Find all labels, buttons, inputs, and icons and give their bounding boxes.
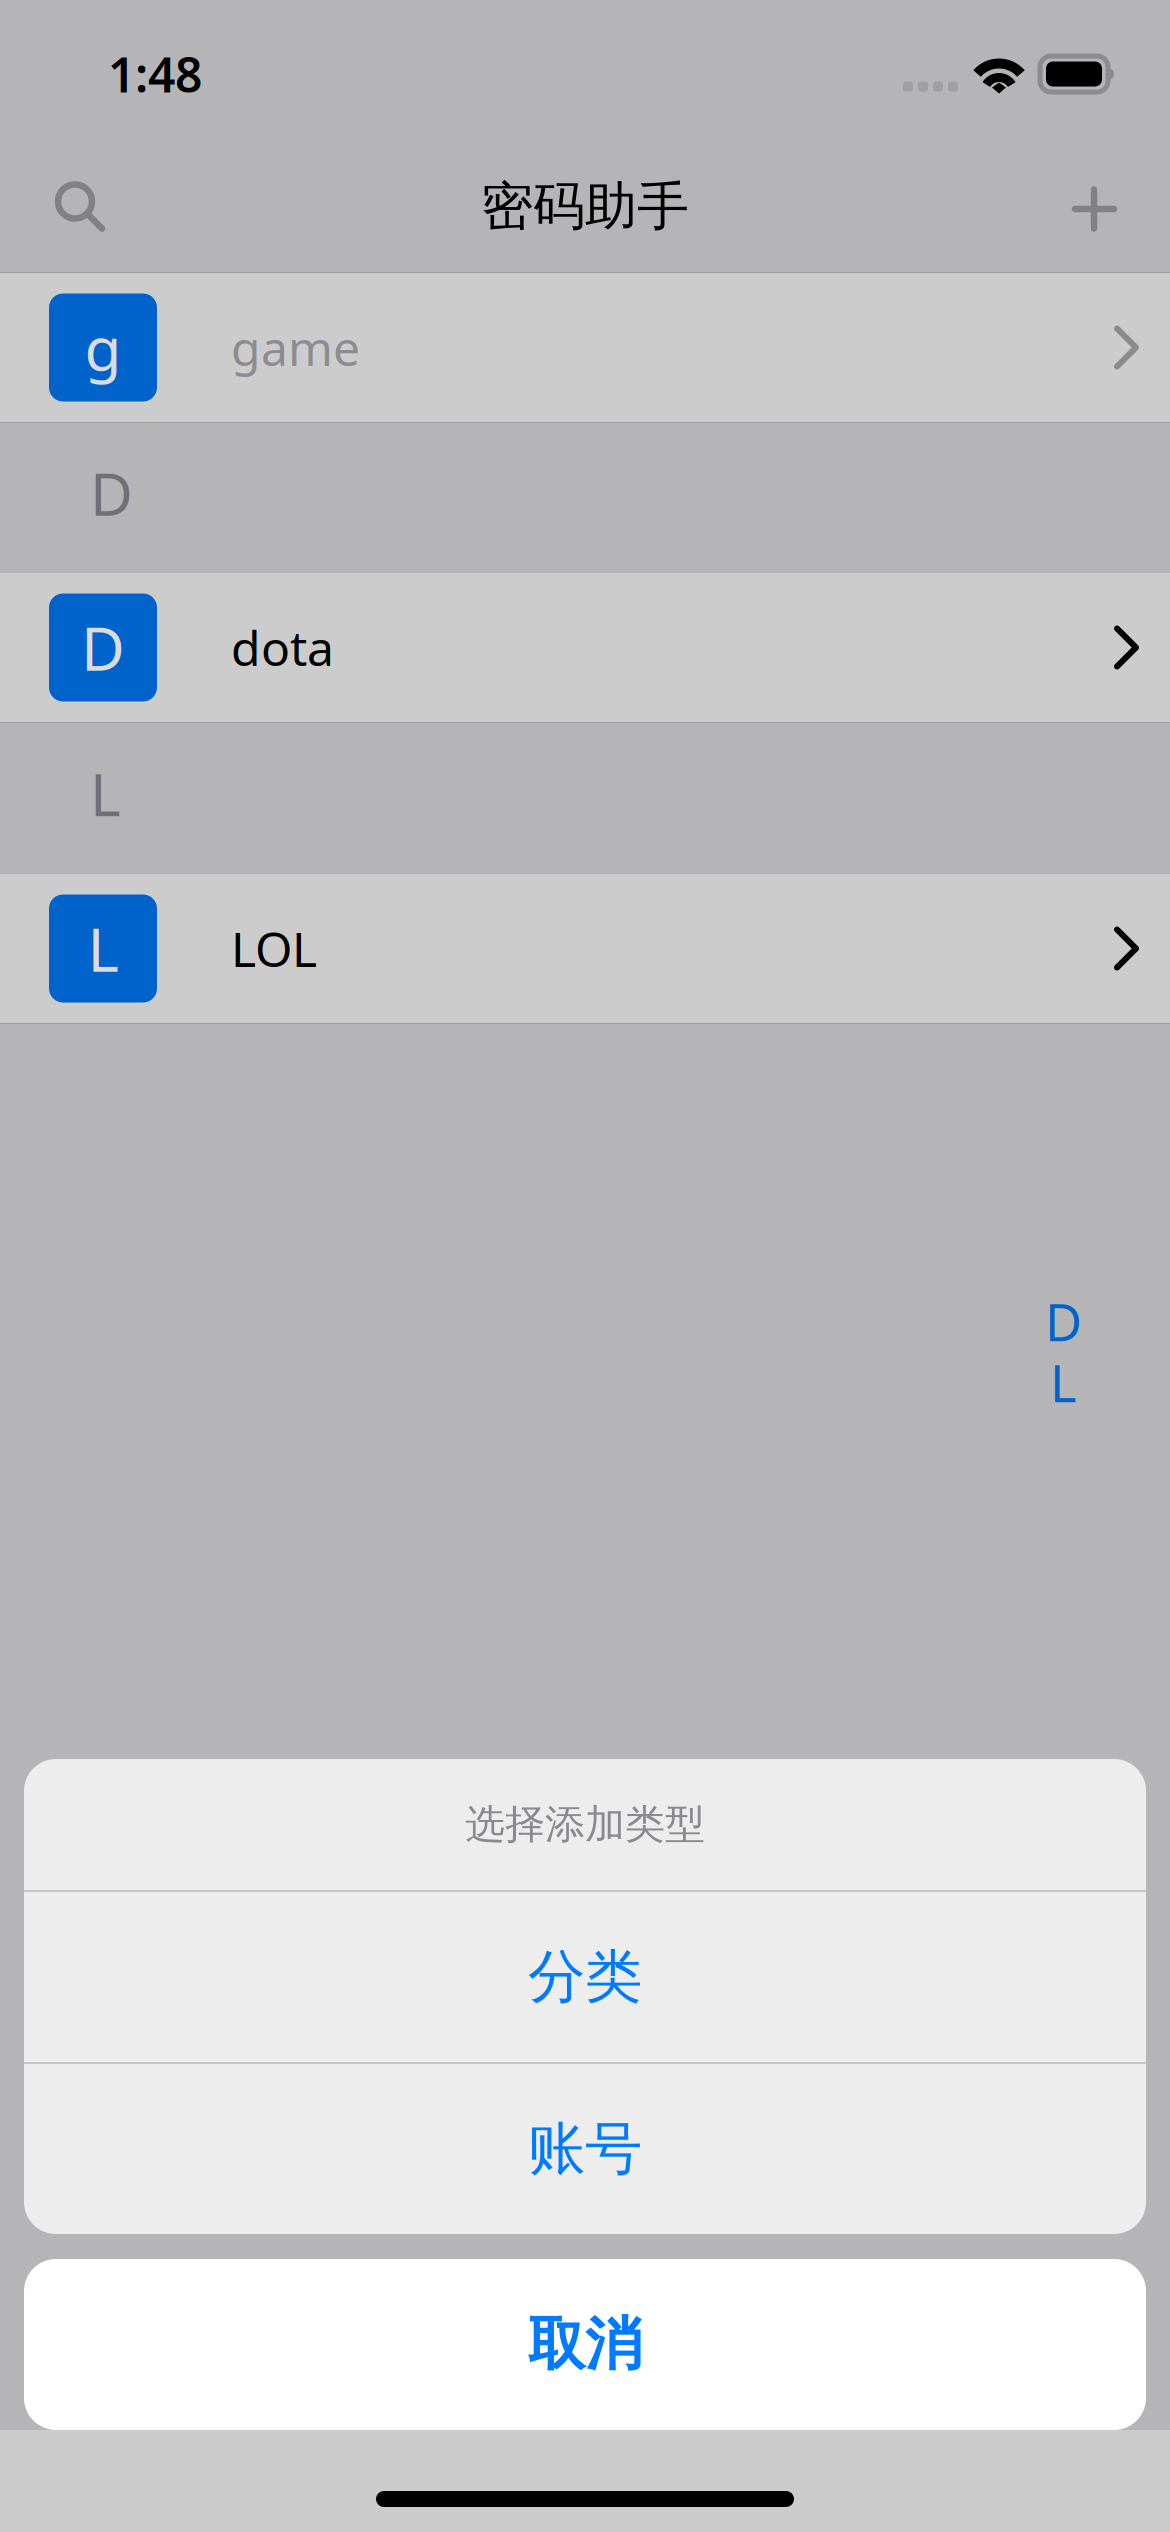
staticText: 分类: [528, 1942, 642, 2012]
staticText: 密码助手: [481, 175, 689, 238]
button[interactable]: Add: [1045, 181, 1170, 231]
staticText: g: [84, 308, 121, 387]
staticText: D: [81, 608, 125, 687]
staticText: L: [87, 909, 118, 988]
button[interactable]: 账号: [24, 2064, 1146, 2234]
button[interactable]: L: [0, 874, 1170, 1023]
staticText: 选择添加类型: [465, 1800, 705, 1849]
staticText: dota: [231, 616, 334, 679]
staticText: D: [1045, 1288, 1082, 1355]
button[interactable]: 取消: [24, 2259, 1146, 2430]
staticText: game: [231, 316, 360, 379]
button[interactable]: 分类: [24, 1892, 1146, 2062]
staticText: 账号: [528, 2114, 642, 2184]
staticText: 1:48: [108, 42, 202, 106]
staticText: D: [90, 454, 133, 532]
staticText: L: [1050, 1349, 1077, 1416]
staticText: 取消: [528, 2309, 642, 2380]
button[interactable]: Search: [0, 181, 123, 231]
button[interactable]: D: [0, 573, 1170, 722]
staticText: L: [90, 754, 121, 832]
button[interactable]: g: [0, 273, 1170, 422]
staticText: LOL: [231, 917, 317, 980]
